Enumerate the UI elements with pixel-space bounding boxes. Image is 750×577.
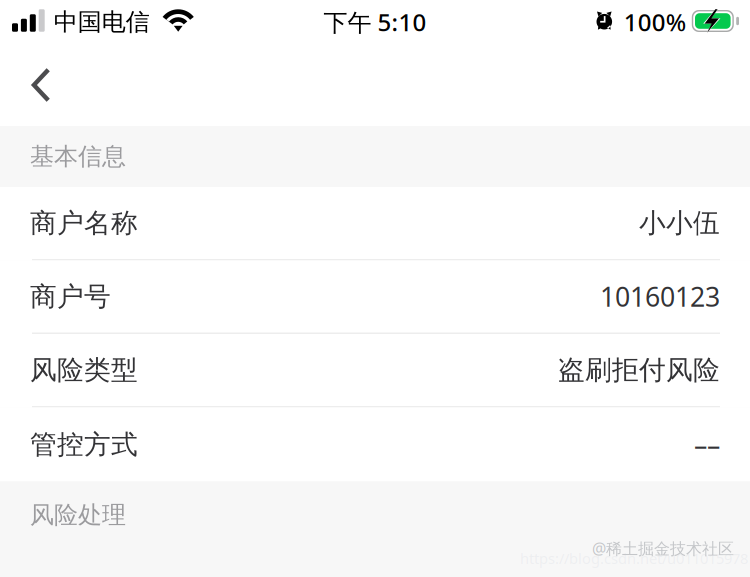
- staticText: 100%: [624, 6, 686, 38]
- staticText: 小小伍: [639, 207, 720, 239]
- staticText: @稀土掘金技术社区: [592, 538, 734, 559]
- staticText: 10160123: [600, 279, 720, 314]
- staticText: 管控方式: [30, 428, 138, 461]
- staticText: https://blog.csdn.net/u011015978: [520, 548, 748, 568]
- staticText: 中国电信: [54, 7, 150, 37]
- staticText: 盗刷拒付风险: [558, 354, 720, 386]
- staticText: 基本信息: [30, 142, 126, 171]
- staticText: 商户名称: [30, 207, 138, 239]
- staticText: 风险类型: [30, 354, 138, 386]
- button[interactable]: Back: [0, 44, 81, 126]
- staticText: ––: [694, 427, 720, 462]
- staticText: 商户号: [30, 280, 111, 313]
- staticText: 风险处理: [30, 500, 126, 530]
- staticText: 下午 5:10: [323, 6, 426, 38]
